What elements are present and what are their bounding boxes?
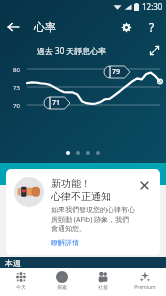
staticText: 心率 (34, 20, 56, 34)
button[interactable] (76, 151, 80, 155)
staticText: 社群 (98, 284, 108, 290)
staticText: 探索 (57, 284, 67, 290)
staticText: 12:30 (142, 1, 163, 12)
staticText: 過去 30 天靜息心率 (37, 45, 107, 56)
staticText: 79 (112, 67, 121, 77)
staticText: Premium (134, 284, 156, 291)
staticText: 75 (13, 84, 20, 92)
button[interactable]: Help (140, 15, 164, 39)
button[interactable]: 探索 (41, 268, 82, 296)
staticText: 今天 (16, 284, 26, 290)
staticText: 如果我們發現您的心律有心房顫動 (AFib) 跡象，我們會通知您。 (51, 205, 136, 234)
staticText: ? (149, 19, 155, 35)
button[interactable] (86, 151, 90, 155)
staticText: 70 (13, 102, 20, 110)
button[interactable]: Settings (114, 15, 138, 39)
staticText: 心律不正通知 (51, 190, 111, 203)
button[interactable]: Back (0, 14, 26, 40)
button[interactable] (96, 151, 100, 155)
staticText: 瞭解詳情 (51, 238, 79, 247)
button[interactable]: Dismiss (136, 177, 152, 193)
button[interactable]: 瞭解詳情 (51, 238, 79, 247)
staticText: 71 (52, 98, 61, 108)
button[interactable]: Expand chart (144, 40, 164, 60)
staticText: 80 (13, 66, 20, 74)
staticText: 新功能！ (51, 177, 91, 190)
staticText: 本週 (5, 258, 21, 268)
button[interactable] (66, 151, 70, 155)
button[interactable]: Premium (124, 268, 166, 296)
button[interactable]: 今天 (0, 268, 41, 296)
button[interactable]: 社群 (82, 268, 124, 296)
button[interactable]: 新功能！ (6, 169, 160, 255)
